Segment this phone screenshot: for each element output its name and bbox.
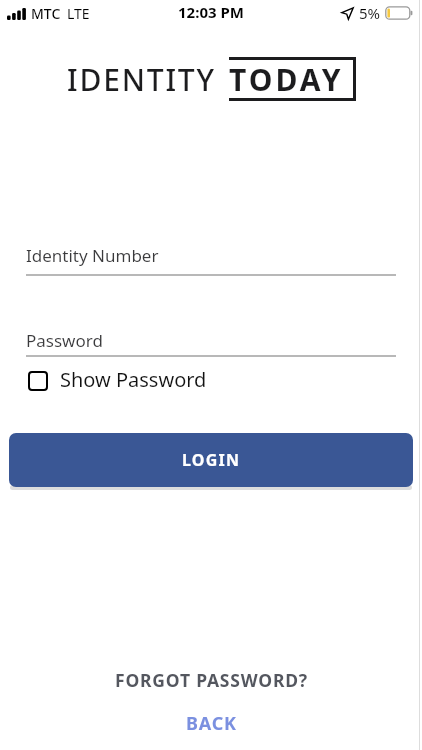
staticText: Show Password — [60, 366, 207, 393]
staticText: IDENTITY — [67, 59, 216, 100]
button[interactable]: BACK — [186, 711, 237, 736]
staticText: Identity Number — [26, 244, 159, 267]
staticText: TODAY — [229, 59, 344, 100]
button[interactable]: Password — [24, 326, 398, 357]
staticText: FORGOT PASSWORD? — [115, 668, 308, 692]
button[interactable]: FORGOT PASSWORD? — [115, 668, 308, 692]
staticText: MTC — [31, 4, 61, 23]
staticText: 12:03 PM — [178, 2, 244, 22]
button[interactable]: Show Password — [28, 366, 207, 393]
staticText: 5% — [359, 3, 381, 23]
staticText: Password — [26, 329, 103, 352]
staticText: BACK — [186, 711, 237, 736]
staticText: LOGIN — [182, 449, 241, 471]
button[interactable]: LOGIN — [9, 433, 413, 487]
button[interactable]: Identity Number — [24, 240, 398, 276]
staticText: LTE — [67, 4, 90, 23]
